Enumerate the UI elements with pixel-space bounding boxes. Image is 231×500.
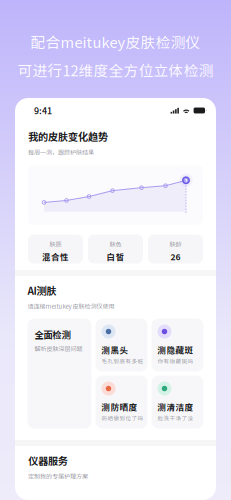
staticText: 测防晒度 [101, 401, 137, 413]
staticText: 肤龄 [169, 240, 181, 248]
staticText: AI测肤 [27, 283, 56, 298]
staticText: 防晒做到位了吗 [101, 414, 143, 422]
staticText: 请连接meitukey 皮肤检测仪使用 [27, 302, 114, 311]
staticText: 白皙 [106, 250, 124, 263]
staticText: 全面检测 [34, 328, 70, 341]
staticText: 解析皮肤深层问题 [34, 344, 82, 353]
staticText: 测黑头 [101, 344, 128, 356]
button[interactable]: 测防晒度 [95, 376, 147, 429]
staticText: 混合性 [42, 250, 69, 263]
staticText: 配合meitukey皮肤检测仪 [30, 31, 200, 52]
staticText: 你有隐藏斑吗 [157, 357, 193, 365]
button[interactable]: 全面检测 [27, 319, 91, 429]
staticText: 仪器服务 [28, 453, 68, 468]
staticText: 9:41 [34, 104, 52, 117]
button[interactable]: 测黑头 [95, 319, 147, 372]
button[interactable]: 测清洁度 [151, 376, 203, 429]
staticText: 测清洁度 [157, 401, 193, 413]
staticText: 肤质 [49, 240, 61, 248]
staticText: 26 [170, 250, 180, 263]
staticText: 毛孔到底有多脏 [101, 357, 143, 365]
staticText: 可进行12维度全方位立体检测 [17, 59, 213, 80]
staticText: 定制我的专属护理方案 [28, 472, 88, 481]
staticText: 每周一测，跟踪护肤结果 [28, 148, 94, 157]
staticText: 我的皮肤变化趋势 [28, 129, 108, 144]
staticText: 肤色 [109, 240, 121, 248]
staticText: 脸洗干净了没 [157, 414, 193, 422]
staticText: 测隐藏斑 [157, 344, 193, 356]
button[interactable]: 测隐藏斑 [151, 319, 203, 372]
